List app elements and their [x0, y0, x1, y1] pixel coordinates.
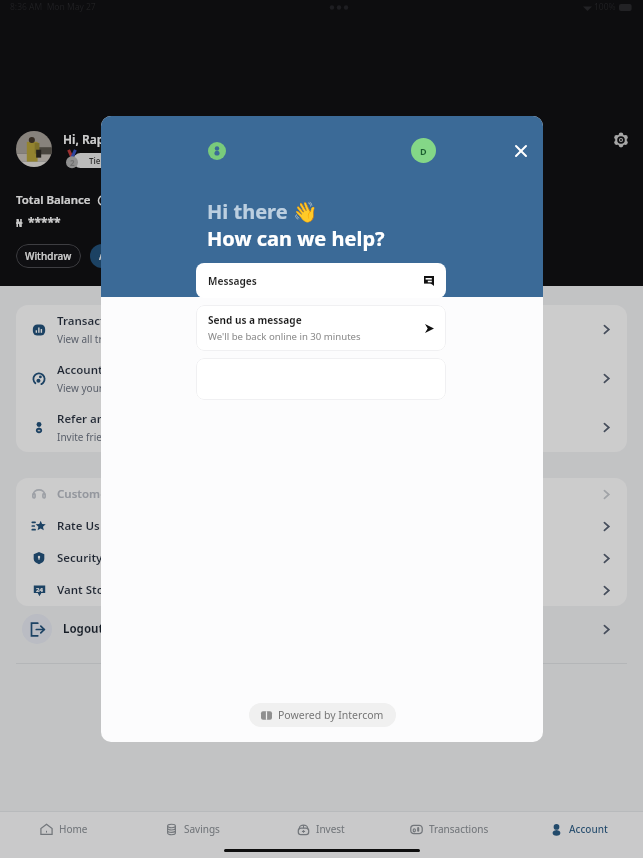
staticText: 24: [36, 586, 43, 594]
button[interactable]: Security: [16, 542, 627, 574]
staticText: View all transactions: [57, 332, 153, 346]
button[interactable]: Withdraw: [16, 244, 81, 268]
staticText: We'll be back online in 30 minutes: [208, 330, 361, 343]
staticText: 100%: [594, 1, 616, 13]
staticText: Invite friends and earn: [57, 430, 164, 444]
staticText: Send us a message: [208, 313, 302, 327]
staticText: Powered by Intercom: [278, 708, 384, 722]
staticText: Refer and Earn: [57, 411, 140, 427]
staticText: Withdraw: [25, 249, 72, 263]
staticText: D: [420, 145, 427, 157]
staticText: Account Statement: [57, 362, 165, 378]
button[interactable]: Send us a message: [196, 305, 446, 351]
staticText: How can we help?: [207, 225, 385, 252]
staticText: Rate Us: [57, 518, 600, 534]
staticText: Account: [569, 822, 608, 836]
button[interactable]: Powered by Intercom: [249, 703, 396, 727]
staticText: *****: [28, 214, 61, 230]
staticText: Logout: [63, 621, 600, 637]
staticText: Transactions: [57, 313, 128, 329]
button[interactable]: Logout: [16, 606, 627, 652]
staticText: ₦: [16, 215, 23, 230]
staticText: 2: [70, 157, 75, 168]
staticText: Hi there 👋: [207, 198, 318, 225]
staticText: Tier 2: [89, 155, 111, 166]
staticText: Vant Store: [57, 582, 600, 598]
button[interactable]: Invest: [256, 822, 385, 836]
button[interactable]: Refer and Earn: [16, 403, 627, 452]
staticText: View your account statement: [57, 381, 194, 395]
button[interactable]: Account: [514, 822, 643, 836]
button[interactable]: Close: [506, 136, 535, 165]
button[interactable]: Rate Us: [16, 510, 627, 542]
button[interactable]: Messages: [196, 263, 446, 298]
staticText: Messages: [208, 274, 257, 288]
staticText: 8:36 AM Mon May 27: [10, 1, 96, 13]
staticText: Savings: [184, 822, 220, 836]
staticText: Hi, Raphael: [63, 131, 130, 147]
button[interactable]: Transactions: [16, 305, 627, 354]
staticText: Invest: [316, 822, 345, 836]
staticText: Home: [59, 822, 88, 836]
button[interactable]: Savings: [128, 822, 256, 836]
staticText: Total Balance: [16, 192, 91, 208]
staticText: Add Money: [99, 249, 153, 263]
staticText: Transactions: [429, 822, 489, 836]
button[interactable]: 24: [16, 574, 627, 606]
button[interactable]: Account Statement: [16, 354, 627, 403]
button[interactable]: Add Money: [90, 244, 162, 268]
button[interactable]: Home: [0, 822, 128, 836]
button[interactable]: Settings: [609, 128, 633, 152]
button[interactable]: Customer Support: [16, 478, 627, 510]
staticText: Security: [57, 550, 600, 566]
button[interactable]: Transactions: [385, 822, 514, 836]
staticText: Customer Support: [57, 486, 600, 502]
